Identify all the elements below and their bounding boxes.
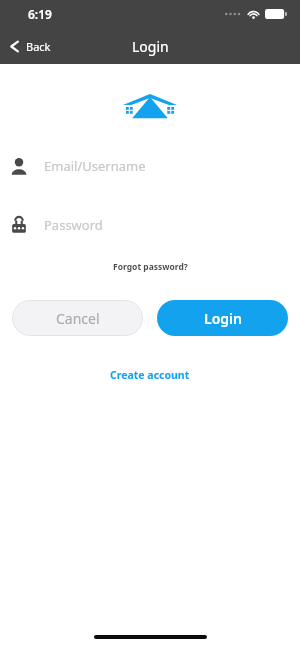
button[interactable]: Back xyxy=(0,32,65,61)
staticText: Cancel xyxy=(56,309,100,328)
staticText: Login xyxy=(204,309,242,328)
button[interactable]: Forgot password? xyxy=(103,258,198,276)
button[interactable]: Create account xyxy=(100,365,200,385)
staticText: Login xyxy=(132,37,169,56)
button[interactable]: Password xyxy=(0,212,300,238)
staticText: Forgot password? xyxy=(113,261,188,273)
staticText: Email/Username xyxy=(44,157,146,175)
button[interactable]: Email/Username xyxy=(0,153,300,179)
staticText: Back xyxy=(26,39,51,54)
staticText: Create account xyxy=(110,368,190,382)
staticText: 6:19 xyxy=(28,6,52,22)
staticText: Password xyxy=(44,216,103,234)
button[interactable]: Cancel xyxy=(12,300,143,336)
button[interactable]: Login xyxy=(157,300,288,336)
